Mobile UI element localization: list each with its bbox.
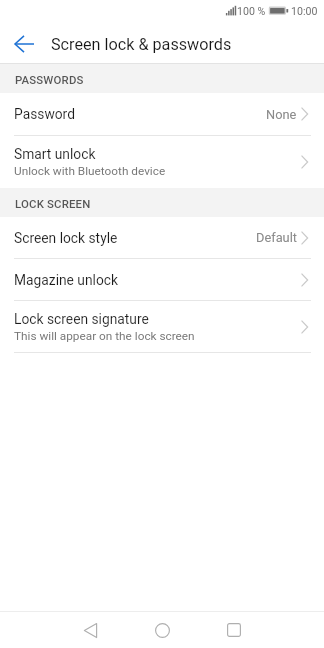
staticText: 100 % [237, 5, 266, 17]
staticText: Default [256, 230, 297, 245]
button[interactable]: Magazine unlock [0, 259, 324, 301]
button[interactable]: Recent apps [216, 612, 252, 648]
button[interactable]: Back [72, 612, 108, 648]
staticText: LOCK SCREEN [15, 197, 91, 210]
staticText: Smart unlock [14, 146, 96, 162]
staticText: PASSWORDS [15, 73, 84, 86]
button[interactable]: Screen lock style [0, 217, 324, 259]
button[interactable]: Password [0, 93, 324, 136]
button[interactable]: Home [144, 612, 180, 648]
staticText: Unlock with Bluetooth device [14, 164, 166, 178]
staticText: Magazine unlock [14, 272, 119, 288]
button[interactable]: Smart unlock [0, 136, 324, 188]
button[interactable]: Back [0, 20, 43, 63]
staticText: 10:00 [291, 5, 318, 17]
staticText: Password [14, 106, 75, 122]
staticText: Screen lock style [14, 230, 118, 246]
staticText: Screen lock & passwords [51, 35, 232, 54]
staticText: This will appear on the lock screen [14, 329, 195, 343]
staticText: None [266, 107, 297, 122]
staticText: Lock screen signature [14, 311, 149, 327]
button[interactable]: Lock screen signature [0, 301, 324, 353]
